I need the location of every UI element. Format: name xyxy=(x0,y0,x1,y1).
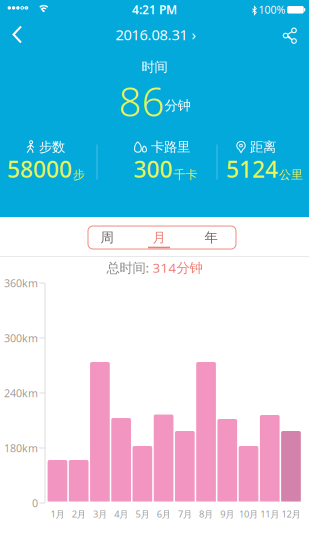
staticText: 300km xyxy=(4,331,38,345)
staticText: 360km xyxy=(4,276,38,290)
staticText: 300 xyxy=(133,154,172,184)
staticText: 9月 xyxy=(220,508,234,520)
button[interactable]: 周 xyxy=(82,226,131,249)
staticText: 月 xyxy=(152,229,165,246)
staticText: 12月 xyxy=(281,508,300,520)
staticText: 10月 xyxy=(239,508,258,520)
staticText: 5月 xyxy=(135,508,149,520)
staticText: 4:21 PM xyxy=(132,1,177,17)
staticText: 2月 xyxy=(72,508,86,520)
staticText: 7月 xyxy=(178,508,192,520)
staticText: 0 xyxy=(32,496,38,510)
staticText: 1月 xyxy=(50,508,64,520)
staticText: 3月 xyxy=(93,508,107,520)
button[interactable] xyxy=(275,20,305,50)
staticText: 5124 xyxy=(226,154,278,184)
staticText: 千卡 xyxy=(173,167,197,182)
staticText: 步数 xyxy=(39,139,65,155)
staticText: 总时间: xyxy=(106,259,152,276)
staticText: 4月 xyxy=(114,508,128,520)
button[interactable]: 年 xyxy=(186,226,235,249)
staticText: 180km xyxy=(4,441,38,455)
staticText: 6月 xyxy=(157,508,171,520)
staticText: 周 xyxy=(100,229,113,246)
button[interactable]: 月 xyxy=(134,226,183,249)
staticText: 86 xyxy=(118,74,164,127)
staticText: 时间 xyxy=(141,59,167,75)
staticText: 240km xyxy=(4,386,38,400)
staticText: 距离 xyxy=(250,139,276,155)
button[interactable] xyxy=(0,0,34,54)
staticText: 步 xyxy=(73,167,85,182)
staticText: 314分钟 xyxy=(152,259,202,276)
staticText: 11月 xyxy=(260,508,279,520)
staticText: 公里 xyxy=(279,167,303,182)
button[interactable]: 2016.08.31 › xyxy=(96,19,216,49)
staticText: 100% xyxy=(258,3,285,17)
staticText: 年 xyxy=(204,229,217,246)
staticText: 分钟 xyxy=(164,97,190,114)
staticText: 2016.08.31 › xyxy=(115,25,196,44)
staticText: 卡路里 xyxy=(151,139,190,155)
staticText: 8月 xyxy=(199,508,213,520)
staticText: 58000 xyxy=(7,154,72,184)
